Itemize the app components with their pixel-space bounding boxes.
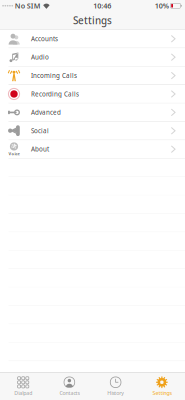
button[interactable]: History	[92, 373, 139, 400]
staticText: Audio	[31, 53, 49, 61]
staticText: Voice	[8, 151, 19, 156]
staticText: Settings	[73, 14, 112, 27]
button[interactable]: Voice	[0, 140, 185, 159]
button[interactable]: Recording Calls	[0, 85, 185, 103]
staticText: About	[31, 145, 49, 153]
staticText: Incoming Calls	[31, 71, 77, 80]
staticText: Social	[31, 126, 49, 135]
staticText: Accounts	[31, 34, 58, 43]
button[interactable]: Social	[0, 122, 185, 140]
staticText: Advanced	[31, 108, 61, 117]
button[interactable]: Settings	[139, 373, 185, 400]
staticText: Recording Calls	[31, 90, 79, 98]
button[interactable]: Contacts	[46, 373, 92, 400]
button[interactable]: Advanced	[0, 103, 185, 122]
staticText: Contacts	[59, 389, 79, 397]
button[interactable]: Incoming Calls	[0, 67, 185, 85]
staticText: No SIM	[15, 1, 41, 11]
button[interactable]: Audio	[0, 48, 185, 67]
staticText: Settings	[152, 389, 171, 397]
button[interactable]: Dialpad	[0, 373, 46, 400]
button[interactable]: Accounts	[0, 30, 185, 48]
staticText: History	[107, 389, 124, 397]
staticText: Dialpad	[14, 389, 32, 397]
staticText: 10%	[155, 1, 169, 11]
staticText: 10:46	[93, 1, 111, 11]
